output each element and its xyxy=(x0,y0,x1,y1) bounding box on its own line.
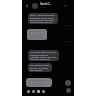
button[interactable]: Gallery xyxy=(31,89,35,93)
staticText: Great, I signed yesterday and sent it ba… xyxy=(30,14,56,23)
button[interactable]: One more thing - the team meeting moved … xyxy=(28,50,59,61)
button[interactable]: Voice message xyxy=(66,88,71,93)
button[interactable]: Camera xyxy=(26,89,30,93)
button[interactable]: Video call xyxy=(62,3,68,9)
staticText: One more thing - the team meeting moved … xyxy=(30,51,57,60)
button[interactable]: Attach xyxy=(41,89,45,93)
button[interactable]: Send xyxy=(65,80,71,86)
staticText: Perfect, thanks so much! I will forward … xyxy=(29,30,45,39)
staticText: online xyxy=(40,6,46,9)
button[interactable]: Sounds good to me, see you all on Thursd… xyxy=(26,78,52,87)
button[interactable]: Back xyxy=(24,3,30,9)
staticText: 10:44 AM xyxy=(62,40,71,43)
button[interactable]: Great, I signed yesterday and sent it ba… xyxy=(28,13,58,24)
button[interactable]: Emoji xyxy=(36,89,40,93)
staticText: Sarah C. xyxy=(40,2,51,6)
button[interactable]: Yes Thursday works for me. I'll update m… xyxy=(28,63,52,72)
staticText: Yes Thursday works for me. I'll update m… xyxy=(30,64,50,71)
button[interactable]: Perfect, thanks so much! I will forward … xyxy=(27,29,47,40)
staticText: Sounds good to me, see you all on Thursd… xyxy=(28,79,50,86)
staticText: 10:42 AM xyxy=(62,24,71,27)
